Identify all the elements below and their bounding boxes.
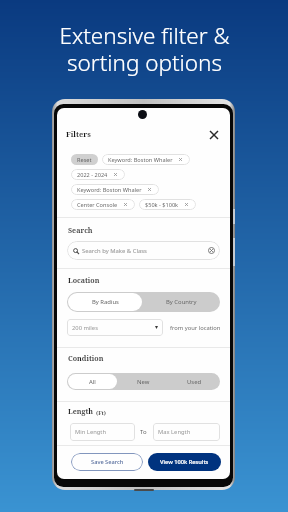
button[interactable]: Search by Make & Class — [67, 241, 220, 260]
button[interactable]: New — [119, 374, 168, 389]
staticText: Extensive filter & sorting options — [59, 20, 230, 78]
staticText: All — [89, 378, 96, 386]
button[interactable]: By Country — [144, 293, 219, 311]
button[interactable]: Close filters — [206, 127, 222, 143]
staticText: Condition — [68, 353, 104, 363]
staticText: Length — [68, 406, 94, 416]
staticText: By Country — [166, 298, 197, 306]
button[interactable]: $50k - $100k — [139, 199, 196, 210]
staticText: (Ft) — [96, 409, 106, 416]
staticText: Search by Make & Class — [82, 247, 147, 255]
staticText: To — [140, 428, 147, 436]
staticText: Min Length — [75, 428, 106, 436]
button[interactable]: Min Length — [70, 423, 135, 441]
staticText: Filters — [66, 129, 91, 139]
staticText: View 100k Results — [160, 458, 209, 466]
staticText: Keyword: Boston Whaler — [108, 156, 173, 164]
button[interactable]: Used — [170, 374, 219, 389]
staticText: Keyword: Boston Whaler — [77, 186, 142, 194]
button[interactable]: Keyword: Boston Whaler — [102, 154, 190, 165]
staticText: from your location — [170, 324, 221, 332]
staticText: Location — [68, 275, 100, 285]
staticText: $50k - $100k — [145, 201, 179, 209]
staticText: By Radius — [92, 298, 119, 306]
button[interactable]: Max Length — [153, 423, 220, 441]
button[interactable]: Filters — [66, 129, 91, 139]
staticText: 200 miles — [72, 324, 98, 332]
staticText: Search — [68, 225, 93, 235]
button[interactable]: View 100k Results — [148, 453, 221, 471]
staticText: Used — [187, 378, 202, 386]
button[interactable]: Center Console — [71, 199, 135, 210]
button[interactable]: Reset — [71, 154, 98, 165]
staticText: Reset — [77, 156, 92, 164]
staticText: Save Search — [91, 458, 124, 466]
button[interactable]: Save Search — [71, 453, 143, 471]
staticText: New — [137, 378, 150, 386]
button[interactable]: Keyword: Boston Whaler — [71, 184, 159, 195]
staticText: 2022 - 2024 — [77, 171, 108, 179]
button[interactable]: 2022 - 2024 — [71, 169, 125, 180]
staticText: Center Console — [77, 201, 118, 209]
staticText: Max Length — [158, 428, 191, 436]
button[interactable]: All — [68, 374, 117, 389]
button[interactable]: By Radius — [68, 293, 142, 311]
button[interactable]: 200 miles — [67, 319, 163, 336]
